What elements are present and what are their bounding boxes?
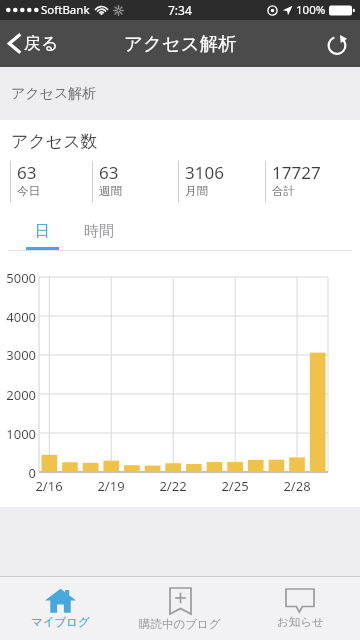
staticText: 月間	[185, 184, 208, 198]
staticText: 日	[35, 222, 50, 241]
staticText: 2/19	[89, 477, 133, 495]
button[interactable]: 戻る	[0, 25, 73, 62]
staticText: 5000	[0, 269, 36, 287]
button[interactable]: 日	[22, 222, 62, 250]
staticText: SoftBank	[41, 2, 90, 18]
staticText: 63	[17, 161, 37, 184]
button[interactable]: お知らせ	[240, 577, 360, 640]
staticText: アクセス解析	[11, 85, 97, 103]
staticText: 63	[99, 161, 119, 184]
staticText: 1000	[0, 425, 36, 443]
staticText: 3000	[0, 346, 36, 364]
staticText: 購読中のブログ	[139, 617, 221, 631]
staticText: 100%	[296, 2, 326, 18]
staticText: アクセス解析	[124, 32, 237, 55]
button[interactable]: Refresh	[314, 24, 360, 64]
staticText: お知らせ	[277, 615, 324, 629]
staticText: 7:34	[168, 2, 192, 18]
staticText: 週間	[99, 184, 122, 198]
staticText: 合計	[272, 184, 295, 198]
staticText: 3106	[185, 161, 224, 184]
staticText: 2/25	[213, 477, 257, 495]
staticText: 17727	[272, 161, 321, 184]
button[interactable]: マイブログ	[0, 577, 120, 640]
staticText: 0	[0, 464, 36, 482]
staticText: アクセス数	[11, 131, 98, 152]
staticText: 時間	[84, 222, 114, 241]
staticText: 戻る	[24, 33, 59, 54]
button[interactable]: 購読中のブログ	[120, 577, 240, 640]
staticText: 2000	[0, 386, 36, 404]
staticText: 2/16	[27, 477, 71, 495]
staticText: マイブログ	[31, 615, 90, 629]
button[interactable]: 時間	[76, 222, 122, 250]
staticText: 2/22	[151, 477, 195, 495]
staticText: 4000	[0, 308, 36, 326]
staticText: 2/28	[275, 477, 319, 495]
staticText: 今日	[17, 184, 40, 198]
